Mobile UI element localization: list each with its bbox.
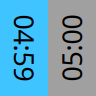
staticText: 05:00 bbox=[38, 30, 96, 66]
button[interactable]: White clock, 4 minutes 59 seconds remain… bbox=[0, 0, 48, 96]
button[interactable]: Black clock, 5 minutes remaining, paused… bbox=[48, 0, 96, 96]
staticText: 04:59 bbox=[0, 30, 57, 66]
